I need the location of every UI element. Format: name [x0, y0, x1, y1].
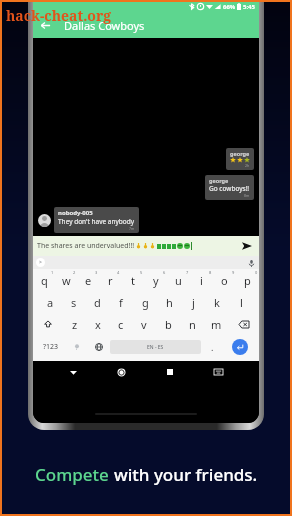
button[interactable]: c [109, 313, 132, 335]
button[interactable]: Emoji [66, 335, 88, 359]
button[interactable]: n [180, 313, 204, 335]
staticText: l [240, 295, 243, 310]
button[interactable]: george [226, 148, 254, 170]
staticText: m [211, 317, 222, 332]
staticText: The shares are undervalued!!! [37, 241, 135, 251]
staticText: w [62, 273, 71, 288]
staticText: 0 [255, 270, 258, 275]
button[interactable]: r [99, 269, 121, 291]
button[interactable]: x [86, 313, 109, 335]
staticText: 3 [95, 270, 98, 275]
button[interactable]: Recents [145, 361, 194, 383]
staticText: 1 [51, 270, 54, 275]
staticText: b [165, 317, 172, 332]
button[interactable]: a [39, 291, 62, 313]
button[interactable]: Back [49, 361, 97, 383]
staticText: 7 [186, 270, 189, 275]
staticText: 5:45 [243, 3, 255, 11]
button[interactable]: Change language [88, 335, 110, 359]
staticText: p [244, 273, 251, 288]
staticText: 6 [163, 270, 166, 275]
staticText: n [189, 317, 196, 332]
button[interactable]: Back [33, 13, 58, 38]
button[interactable]: j [181, 291, 205, 313]
staticText: y [153, 273, 159, 288]
button[interactable]: Expand suggestions [36, 258, 45, 267]
staticText: i [200, 273, 203, 288]
button[interactable]: e [77, 269, 99, 291]
staticText: o [221, 273, 228, 288]
staticText: g [142, 295, 149, 310]
staticText: george [209, 177, 229, 184]
button[interactable]: y [144, 269, 167, 291]
staticText: t [131, 273, 135, 288]
staticText: 2h [245, 163, 250, 168]
staticText: EN - ES [147, 344, 164, 351]
button[interactable]: Shift [33, 313, 63, 335]
button[interactable]: d [85, 291, 109, 313]
staticText: . [211, 341, 214, 353]
staticText: x [95, 317, 101, 332]
staticText: ?123 [43, 342, 59, 352]
button[interactable]: Voice input [246, 258, 256, 268]
staticText: 7m [129, 226, 135, 231]
button[interactable]: ?123 [36, 335, 66, 359]
button[interactable]: b [156, 313, 180, 335]
staticText: > [39, 259, 42, 266]
staticText: 8 [209, 270, 212, 275]
button[interactable]: EN - ES [110, 340, 201, 354]
staticText: z [72, 317, 78, 332]
button[interactable]: Home [97, 361, 145, 383]
button[interactable]: Backspace [228, 313, 259, 335]
button[interactable]: h [157, 291, 181, 313]
staticText: 9 [232, 270, 235, 275]
button[interactable]: m [204, 313, 228, 335]
button[interactable]: w [55, 269, 77, 291]
button[interactable]: o [213, 269, 236, 291]
staticText: Compete [35, 463, 114, 486]
staticText: 8m [244, 193, 250, 198]
button[interactable]: k [205, 291, 229, 313]
button[interactable]: t [121, 269, 144, 291]
staticText: d [94, 295, 101, 310]
staticText: george [230, 150, 250, 157]
button[interactable]: Switch keyboard [194, 361, 243, 383]
button[interactable]: s [62, 291, 85, 313]
staticText: They don't have anybody [58, 217, 135, 226]
staticText: Go cowboys!! [209, 184, 250, 193]
staticText: q [41, 273, 48, 288]
staticText: nobody-005 [58, 209, 93, 217]
button[interactable]: z [63, 313, 86, 335]
button[interactable]: v [132, 313, 156, 335]
staticText: 2 [73, 270, 76, 275]
staticText: hack-cheat.org [6, 6, 112, 25]
button[interactable]: Send [239, 238, 255, 254]
button[interactable]: george [205, 175, 254, 200]
staticText: v [141, 317, 147, 332]
staticText: with your friends. [114, 463, 258, 486]
staticText: a [47, 295, 54, 310]
staticText: u [175, 273, 182, 288]
staticText: 5 [140, 270, 143, 275]
button[interactable]: l [229, 291, 253, 313]
button[interactable]: nobody-005 [54, 207, 139, 233]
staticText: f [119, 295, 123, 310]
staticText: Dallas Cowboys [64, 18, 145, 33]
staticText: e [85, 273, 92, 288]
button[interactable]: Enter [232, 339, 248, 355]
staticText: c [118, 317, 124, 332]
staticText: 66% [223, 3, 236, 11]
staticText: h [166, 295, 173, 310]
button[interactable]: g [133, 291, 157, 313]
staticText: j [192, 295, 195, 310]
button[interactable]: . [201, 335, 223, 359]
button[interactable]: u [167, 269, 190, 291]
button[interactable]: p [236, 269, 259, 291]
staticText: 4 [117, 270, 120, 275]
staticText: r [108, 273, 113, 288]
button[interactable]: q [33, 269, 55, 291]
button[interactable]: f [109, 291, 133, 313]
button[interactable]: i [190, 269, 213, 291]
staticText: k [214, 295, 220, 310]
staticText: s [71, 295, 77, 310]
